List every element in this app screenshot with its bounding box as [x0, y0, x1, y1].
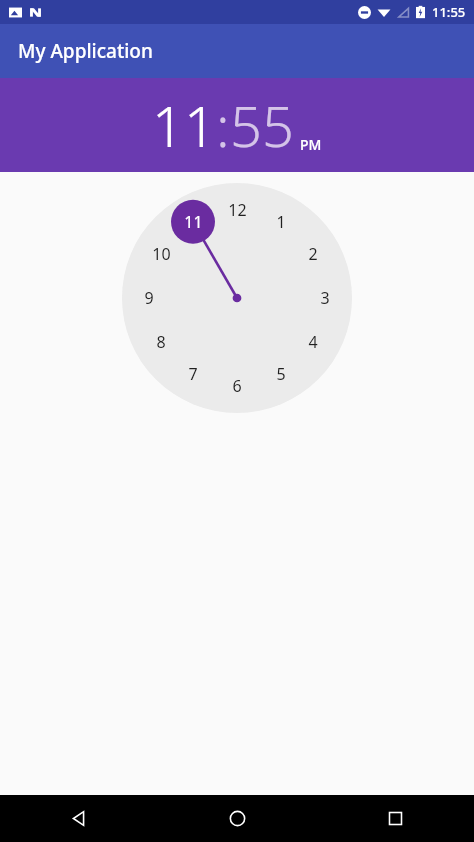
- button[interactable]: 55: [230, 87, 294, 163]
- staticText: 11: [184, 211, 203, 233]
- staticText: 8: [156, 331, 166, 353]
- staticText: 10: [152, 243, 171, 265]
- button[interactable]: Clock face, 11 o'clock selected: [122, 183, 352, 413]
- staticText: 1: [276, 211, 286, 233]
- staticText: 5: [276, 363, 286, 385]
- button[interactable]: PM: [300, 135, 322, 154]
- button[interactable]: Home: [158, 795, 316, 842]
- button[interactable]: Back: [0, 795, 158, 842]
- staticText: 12: [228, 199, 247, 221]
- button[interactable]: Recent apps: [316, 795, 474, 842]
- staticText: 4: [308, 331, 318, 353]
- staticText: 11:55: [432, 3, 466, 21]
- staticText: 9: [144, 287, 154, 309]
- staticText: 7: [188, 363, 198, 385]
- staticText: My Application: [18, 38, 153, 64]
- staticText: :: [216, 87, 230, 163]
- staticText: 2: [308, 243, 318, 265]
- staticText: 3: [320, 287, 330, 309]
- button[interactable]: 11: [152, 87, 216, 163]
- staticText: 6: [232, 375, 242, 397]
